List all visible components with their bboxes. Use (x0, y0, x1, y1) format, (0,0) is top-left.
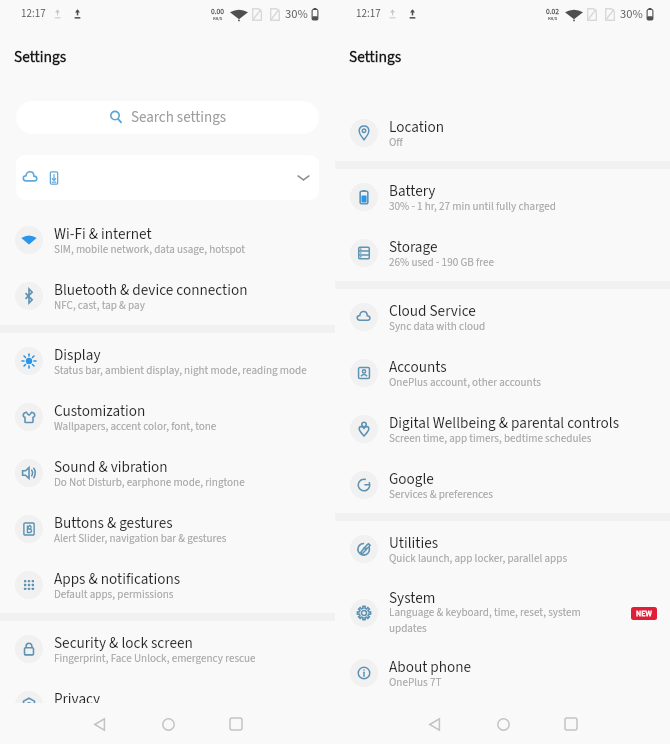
staticText: 12:17 (21, 6, 46, 22)
button[interactable]: Recent apps (537, 705, 605, 743)
staticText: Bluetooth & device connection (54, 279, 248, 301)
button[interactable]: Customization (0, 389, 335, 445)
staticText: Accounts (389, 356, 447, 378)
staticText: Display (54, 344, 101, 366)
button[interactable]: Home (469, 705, 537, 743)
staticText: Google (389, 468, 434, 490)
staticText: Apps & notifications (54, 568, 181, 590)
staticText: Wallpapers, accent color, font, tone (54, 419, 217, 435)
staticText: 12:17 (356, 6, 381, 22)
staticText: KB/S (548, 15, 558, 21)
staticText: Screen time, app timers, bedtime schedul… (389, 431, 592, 447)
staticText: Location (389, 116, 445, 138)
staticText: Settings (349, 46, 402, 68)
staticText: Buttons & gestures (54, 512, 173, 534)
button[interactable]: Search settings (16, 101, 319, 134)
button[interactable]: Digital Wellbeing & parental controls (335, 401, 670, 457)
staticText: 30% (285, 5, 308, 23)
staticText: Do Not Disturb, earphone mode, ringtone (54, 475, 245, 491)
button[interactable]: Display (0, 333, 335, 389)
button[interactable] (16, 155, 319, 200)
staticText: NEW (636, 608, 652, 619)
staticText: Wi-Fi & internet (54, 223, 152, 245)
button[interactable]: Recent apps (202, 705, 270, 743)
staticText: Alert Slider, navigation bar & gestures (54, 531, 227, 547)
staticText: Sync data with cloud (389, 319, 486, 335)
staticText: Sound & vibration (54, 456, 168, 478)
button[interactable]: About phone (335, 645, 670, 701)
button[interactable]: Back (66, 705, 134, 743)
button[interactable]: Location (335, 105, 670, 161)
staticText: Default apps, permissions (54, 587, 174, 603)
staticText: Storage (389, 236, 438, 258)
button[interactable]: Bluetooth & device connection (0, 268, 335, 324)
button[interactable]: Apps & notifications (0, 557, 335, 613)
staticText: Digital Wellbeing & parental controls (389, 412, 620, 434)
button[interactable]: Sound & vibration (0, 445, 335, 501)
staticText: 30% - 1 hr, 27 min until fully charged (389, 199, 556, 215)
button[interactable]: System (335, 577, 670, 645)
button[interactable]: Cloud Service (335, 289, 670, 345)
staticText: Status bar, ambient display, night mode,… (54, 363, 307, 379)
staticText: 26% used - 190 GB free (389, 255, 494, 271)
button[interactable]: Home (134, 705, 202, 743)
staticText: Fingerprint, Face Unlock, emergency resc… (54, 651, 256, 667)
staticText: Customization (54, 400, 146, 422)
staticText: Language & keyboard, time, reset, system (389, 605, 581, 621)
staticText: Permission manager (54, 707, 149, 723)
staticText: Settings (14, 46, 67, 68)
button[interactable]: Google (335, 457, 670, 513)
button[interactable]: Utilities (335, 521, 670, 577)
staticText: 0.00 (211, 6, 225, 17)
staticText: Battery (389, 180, 436, 202)
button[interactable]: Battery (335, 169, 670, 225)
staticText: Off (389, 135, 403, 151)
staticText: updates (389, 621, 427, 637)
staticText: SIM, mobile network, data usage, hotspot (54, 242, 246, 258)
staticText: Search settings (131, 107, 227, 128)
staticText: Quick launch, app locker, parallel apps (389, 551, 568, 567)
staticText: System (389, 587, 436, 609)
staticText: Security & lock screen (54, 632, 193, 654)
staticText: 0.02 (546, 6, 560, 17)
staticText: Utilities (389, 532, 439, 554)
staticText: Services & preferences (389, 487, 493, 503)
button[interactable]: Privacy (0, 677, 335, 733)
staticText: 30% (620, 5, 643, 23)
button[interactable]: Buttons & gestures (0, 501, 335, 557)
staticText: OnePlus account, other accounts (389, 375, 541, 391)
button[interactable]: Back (401, 705, 469, 743)
staticText: NFC, cast, tap & pay (54, 298, 145, 314)
button[interactable]: Security & lock screen (0, 621, 335, 677)
button[interactable]: Wi-Fi & internet (0, 212, 335, 268)
staticText: KB/S (213, 15, 223, 21)
button[interactable]: Storage (335, 225, 670, 281)
staticText: OnePlus 7T (389, 675, 442, 691)
staticText: About phone (389, 656, 472, 678)
staticText: Privacy (54, 688, 101, 710)
staticText: Cloud Service (389, 300, 476, 322)
button[interactable]: Accounts (335, 345, 670, 401)
